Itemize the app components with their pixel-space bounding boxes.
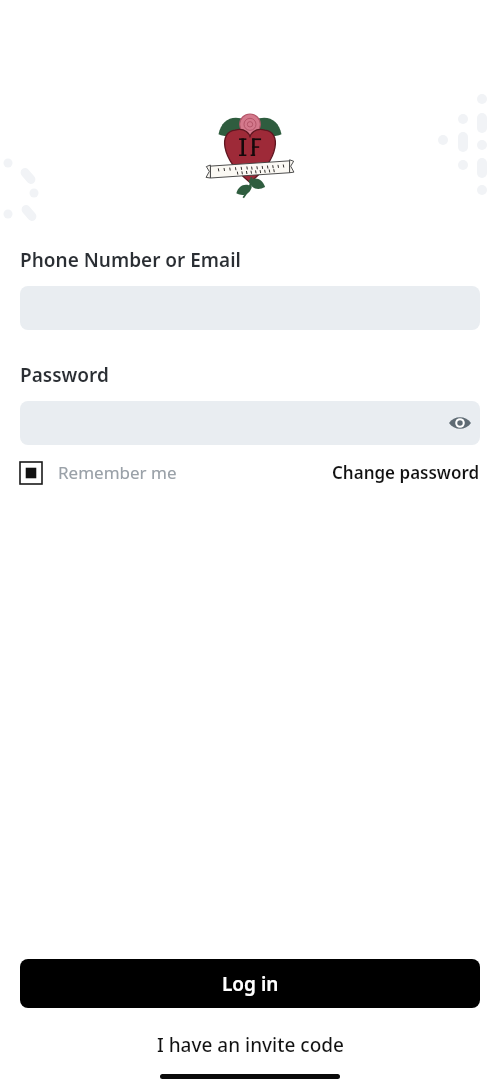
staticText: I have an invite code [157, 1032, 344, 1058]
staticText: Log in [222, 971, 279, 997]
button[interactable]: Remember me [20, 461, 177, 484]
button[interactable]: Show password [440, 403, 480, 443]
button[interactable]: Show password [20, 401, 480, 445]
button[interactable]: Change password [332, 461, 480, 484]
button[interactable]: I have an invite code [0, 1032, 500, 1058]
staticText: Change password [332, 461, 480, 484]
staticText: Remember me [58, 461, 177, 484]
staticText: Phone Number or Email [20, 247, 241, 273]
button[interactable]: Log in [20, 959, 480, 1008]
staticText: Password [20, 362, 109, 388]
